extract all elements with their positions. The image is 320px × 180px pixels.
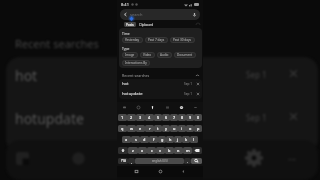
staticText: Past 7 days — [148, 38, 165, 42]
button[interactable]: Image — [122, 52, 138, 58]
staticText: Time — [122, 31, 130, 35]
button[interactable]: j — [174, 136, 182, 143]
staticText: q — [121, 126, 124, 131]
button[interactable]: x — [138, 147, 147, 154]
button[interactable]: ?1# — [118, 158, 128, 164]
button[interactable]: Settings — [165, 105, 170, 110]
staticText: search — [130, 12, 143, 17]
button[interactable]: e — [136, 125, 145, 132]
button[interactable]: n — [174, 147, 183, 154]
button[interactable]: c — [147, 147, 156, 154]
staticText: Yesterday — [125, 38, 140, 42]
button[interactable]: s — [131, 136, 140, 143]
other: Collapse — [195, 73, 200, 78]
button[interactable]: z — [128, 147, 138, 154]
button[interactable]: , — [128, 158, 135, 164]
button[interactable]: Back — [180, 168, 187, 175]
button[interactable]: 7 — [170, 114, 178, 121]
staticText: Sep 1 — [184, 82, 193, 86]
staticText: Audio — [160, 53, 169, 57]
button[interactable]: d — [140, 136, 149, 143]
staticText: v — [159, 148, 162, 153]
button[interactable]: Yesterday — [122, 37, 143, 43]
staticText: Recent searches — [15, 36, 99, 51]
staticText: a — [125, 137, 128, 142]
staticText: Video — [143, 53, 152, 57]
button[interactable]: Shift — [118, 147, 128, 154]
button[interactable]: m — [183, 147, 192, 154]
button[interactable]: Back — [120, 9, 200, 20]
button[interactable]: . — [184, 158, 191, 164]
staticText: r — [149, 126, 151, 131]
button[interactable]: w — [127, 125, 136, 132]
staticText: Document — [177, 53, 193, 57]
staticText: y — [165, 126, 168, 131]
button[interactable]: Clipboard — [122, 105, 127, 110]
button[interactable]: Sticker — [136, 105, 141, 110]
button[interactable]: 3 — [136, 114, 145, 121]
other: Remove — [196, 92, 200, 96]
button[interactable]: Search — [191, 158, 202, 164]
button[interactable]: 1 — [118, 114, 127, 121]
staticText: . — [187, 159, 189, 164]
button[interactable]: More — [193, 105, 198, 110]
staticText: 0 — [197, 115, 200, 120]
staticText: Clipboard — [139, 23, 154, 27]
button[interactable]: v — [156, 147, 165, 154]
button[interactable]: g — [158, 136, 166, 143]
button[interactable]: Emoji — [179, 105, 184, 110]
button[interactable]: 5 — [154, 114, 162, 121]
staticText: 3 — [139, 115, 142, 120]
staticText: english (US) — [152, 159, 168, 163]
button[interactable]: 0 — [194, 114, 202, 121]
staticText: 2 — [130, 115, 133, 120]
button[interactable]: r — [145, 125, 154, 132]
button[interactable]: a — [122, 136, 131, 143]
button[interactable]: q — [118, 125, 127, 132]
button[interactable]: t — [154, 125, 162, 132]
button[interactable]: p — [194, 125, 202, 132]
staticText: k — [185, 137, 188, 142]
button[interactable]: english (US) — [135, 158, 184, 164]
button[interactable]: Voice — [150, 105, 155, 110]
button[interactable]: b — [165, 147, 174, 154]
staticText: o — [189, 126, 192, 131]
button[interactable]: Interactions By — [122, 60, 150, 66]
staticText: m — [186, 148, 190, 153]
button[interactable]: o — [186, 125, 194, 132]
button[interactable]: Video — [140, 52, 155, 58]
staticText: t — [157, 126, 159, 131]
button[interactable]: Past 7 days — [145, 37, 168, 43]
staticText: n — [177, 148, 180, 153]
button[interactable]: Clipboard — [137, 22, 156, 27]
staticText: h — [169, 137, 172, 142]
button[interactable]: u — [170, 125, 178, 132]
button[interactable]: Audio — [157, 52, 172, 58]
button[interactable]: Document — [174, 52, 196, 58]
button[interactable]: 4 — [145, 114, 154, 121]
other: Remove — [196, 82, 200, 86]
button[interactable]: Backspace — [192, 147, 202, 154]
button[interactable]: hotupdate — [119, 89, 202, 99]
staticText: i — [181, 126, 183, 131]
button[interactable]: i — [178, 125, 186, 132]
button[interactable]: Past 30 days — [170, 37, 195, 43]
button[interactable]: Recents — [133, 168, 140, 175]
button[interactable]: 9 — [186, 114, 194, 121]
button[interactable]: 2 — [127, 114, 136, 121]
button[interactable]: f — [149, 136, 158, 143]
button[interactable]: h — [166, 136, 174, 143]
button[interactable]: 8 — [178, 114, 186, 121]
button[interactable]: k — [182, 136, 190, 143]
staticText: hotupdate — [15, 109, 84, 128]
button[interactable]: hot — [119, 79, 202, 89]
button[interactable]: Posts — [124, 22, 136, 27]
button[interactable]: 6 — [162, 114, 170, 121]
staticText: Sep 1 — [184, 92, 193, 96]
button[interactable]: y — [162, 125, 170, 132]
staticText: s — [135, 137, 137, 142]
button[interactable]: Home — [157, 168, 164, 175]
button[interactable]: l — [190, 136, 198, 143]
staticText: 4 — [148, 115, 151, 120]
